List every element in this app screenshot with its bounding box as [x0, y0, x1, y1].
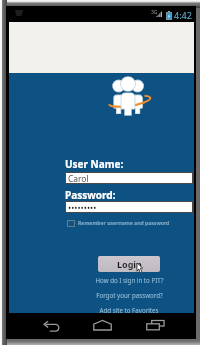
staticText: Login: [117, 258, 142, 270]
button[interactable]: How do I sign in to PIT?: [93, 276, 166, 284]
button[interactable]: •••••••••: [65, 201, 193, 213]
button[interactable]: Forgot your password?: [94, 291, 165, 299]
staticText: •••••••••: [68, 202, 97, 213]
staticText: Password:: [65, 188, 116, 202]
staticText: User Name:: [65, 157, 124, 171]
button[interactable]: Back: [38, 314, 64, 338]
button[interactable]: Recent apps: [142, 313, 168, 337]
staticText: 3G: [151, 9, 158, 16]
button[interactable]: Home: [89, 313, 115, 337]
button[interactable]: Login: [98, 256, 160, 272]
button[interactable]: Carol: [65, 172, 193, 184]
button[interactable]: Add site to Favorites: [97, 306, 161, 314]
staticText: Remember username and password: [78, 220, 170, 227]
button[interactable]: Remember username and password: [67, 220, 170, 227]
staticText: 4:42: [174, 9, 192, 21]
staticText: Carol: [68, 173, 89, 184]
